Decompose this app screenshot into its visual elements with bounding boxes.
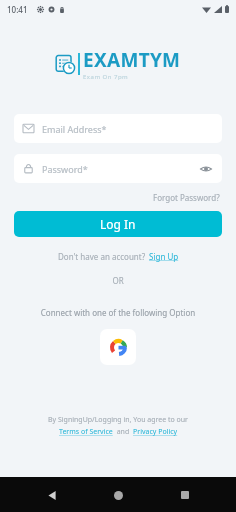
button[interactable]: Home — [103, 480, 133, 510]
staticText: By SigningUp/Logging in, You agree to ou… — [48, 415, 189, 425]
staticText: 10:41 — [7, 4, 28, 15]
staticText: EXAMTYM — [83, 47, 181, 73]
staticText: Log In — [100, 216, 136, 232]
button[interactable]: Sign in with Google — [100, 329, 136, 365]
staticText: Privacy Policy — [133, 427, 178, 437]
button[interactable]: Show password — [199, 162, 213, 176]
staticText: Exam On 7pm — [83, 73, 129, 81]
button[interactable]: Email Address* — [14, 114, 222, 143]
staticText: Terms of Service — [59, 427, 113, 437]
staticText: Email Address* — [42, 123, 213, 135]
staticText: Forgot Password? — [153, 192, 220, 203]
staticText: OR — [0, 275, 236, 286]
button[interactable]: Password* — [14, 154, 222, 183]
button[interactable]: Privacy Policy — [133, 427, 178, 437]
button[interactable]: Sign Up — [149, 251, 179, 262]
staticText: Connect with one of the following Option — [0, 307, 236, 318]
staticText: Password* — [42, 163, 199, 175]
staticText: Don't have an account? — [58, 251, 146, 262]
staticText: and — [113, 427, 133, 437]
button[interactable]: Forgot Password? — [151, 190, 222, 205]
button[interactable]: Log In — [14, 211, 222, 237]
button[interactable]: Terms of Service — [59, 427, 113, 437]
button[interactable]: Back — [37, 480, 67, 510]
staticText: Sign Up — [149, 251, 179, 262]
button[interactable]: Recents — [170, 480, 200, 510]
